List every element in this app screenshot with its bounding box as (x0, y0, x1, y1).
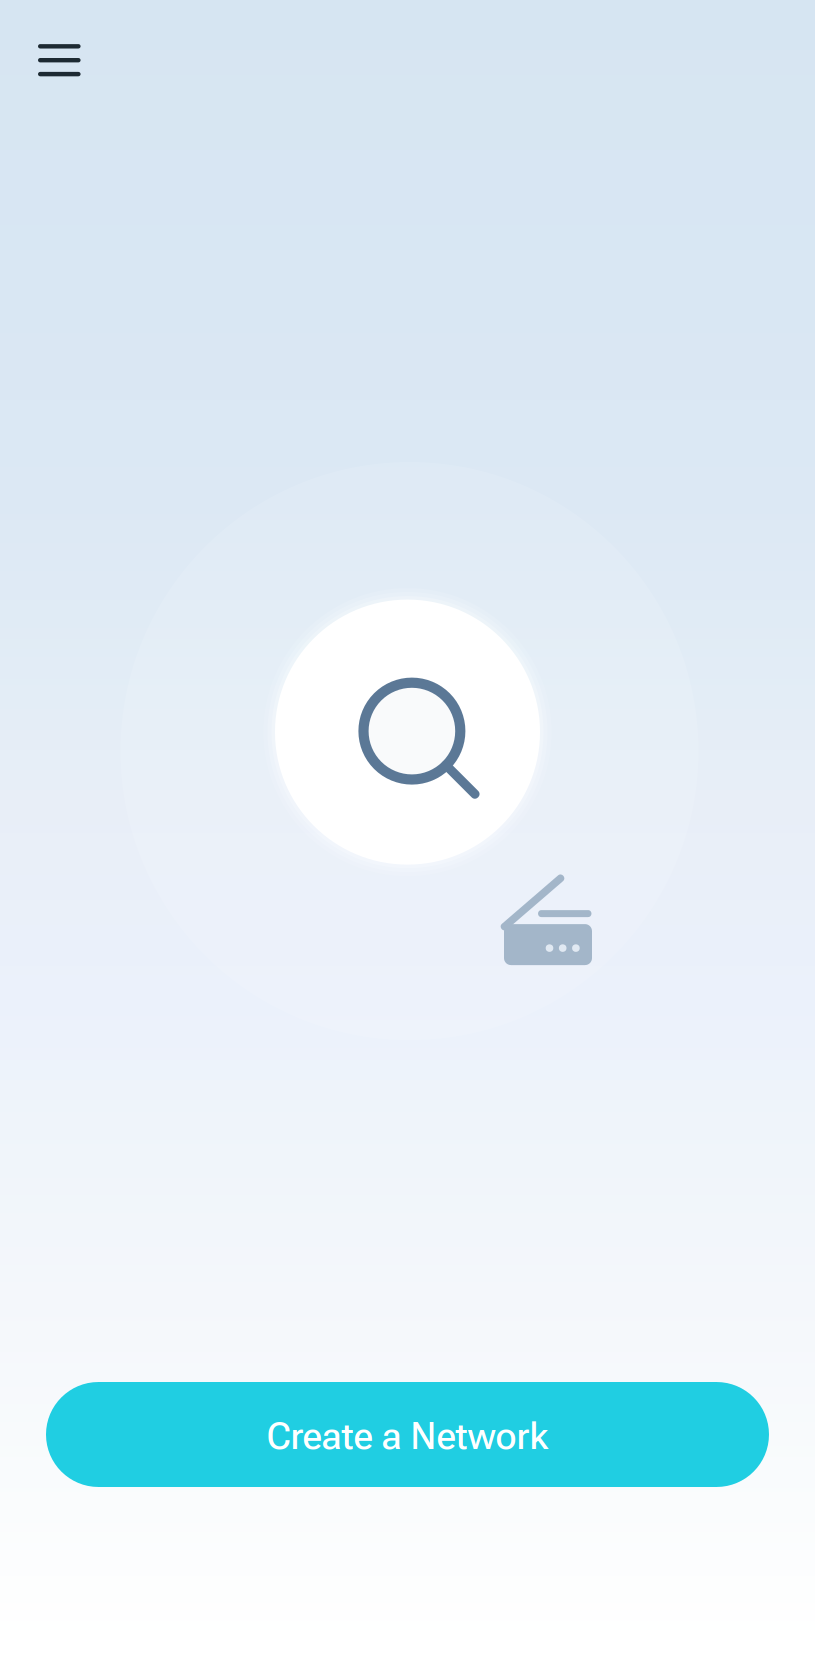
button[interactable]: Menu (20, 23, 98, 97)
staticText: Create a Network (266, 1414, 548, 1458)
button[interactable]: Create a Network (46, 1382, 769, 1487)
